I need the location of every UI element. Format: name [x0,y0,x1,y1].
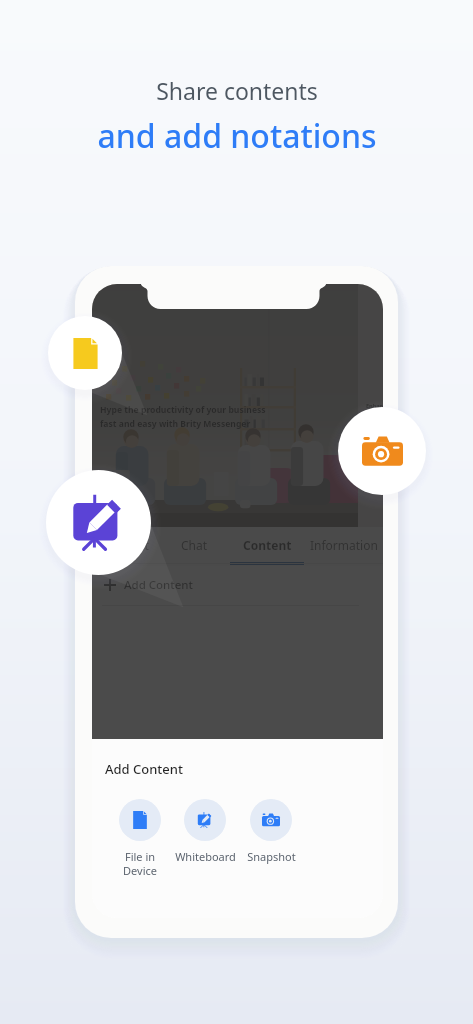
staticText: Information [310,537,378,553]
staticText: Hype the productivity of your business [100,404,266,416]
staticText: of Collaboration [366,409,383,416]
button[interactable]: ut [128,527,158,566]
staticText: Content [243,537,292,553]
staticText: Add Content [105,760,183,778]
staticText: Chat [181,537,208,553]
button[interactable]: Take snapshot [338,407,426,495]
staticText: and add notations [97,114,377,158]
button[interactable]: Open whiteboard [46,470,151,575]
button[interactable]: Share document [48,316,122,390]
staticText: ut [137,537,149,553]
staticText: Whiteboard [175,849,236,864]
staticText: Enhance the Power [366,402,383,409]
staticText: Snapshot [247,849,296,864]
button[interactable]: File in Device [108,799,172,878]
button[interactable]: Whiteboard [172,799,238,864]
staticText: Share contents [156,75,318,106]
button[interactable]: Chat [158,527,230,566]
staticText: Add Content [124,577,193,593]
staticText: fast and easy with Brity Messenger [100,418,251,430]
button[interactable]: Add Content [92,568,383,602]
button[interactable]: Snapshot [238,799,304,864]
button[interactable]: Content [230,527,304,566]
staticText: File in Device [123,849,157,878]
button[interactable]: Information [304,527,383,566]
